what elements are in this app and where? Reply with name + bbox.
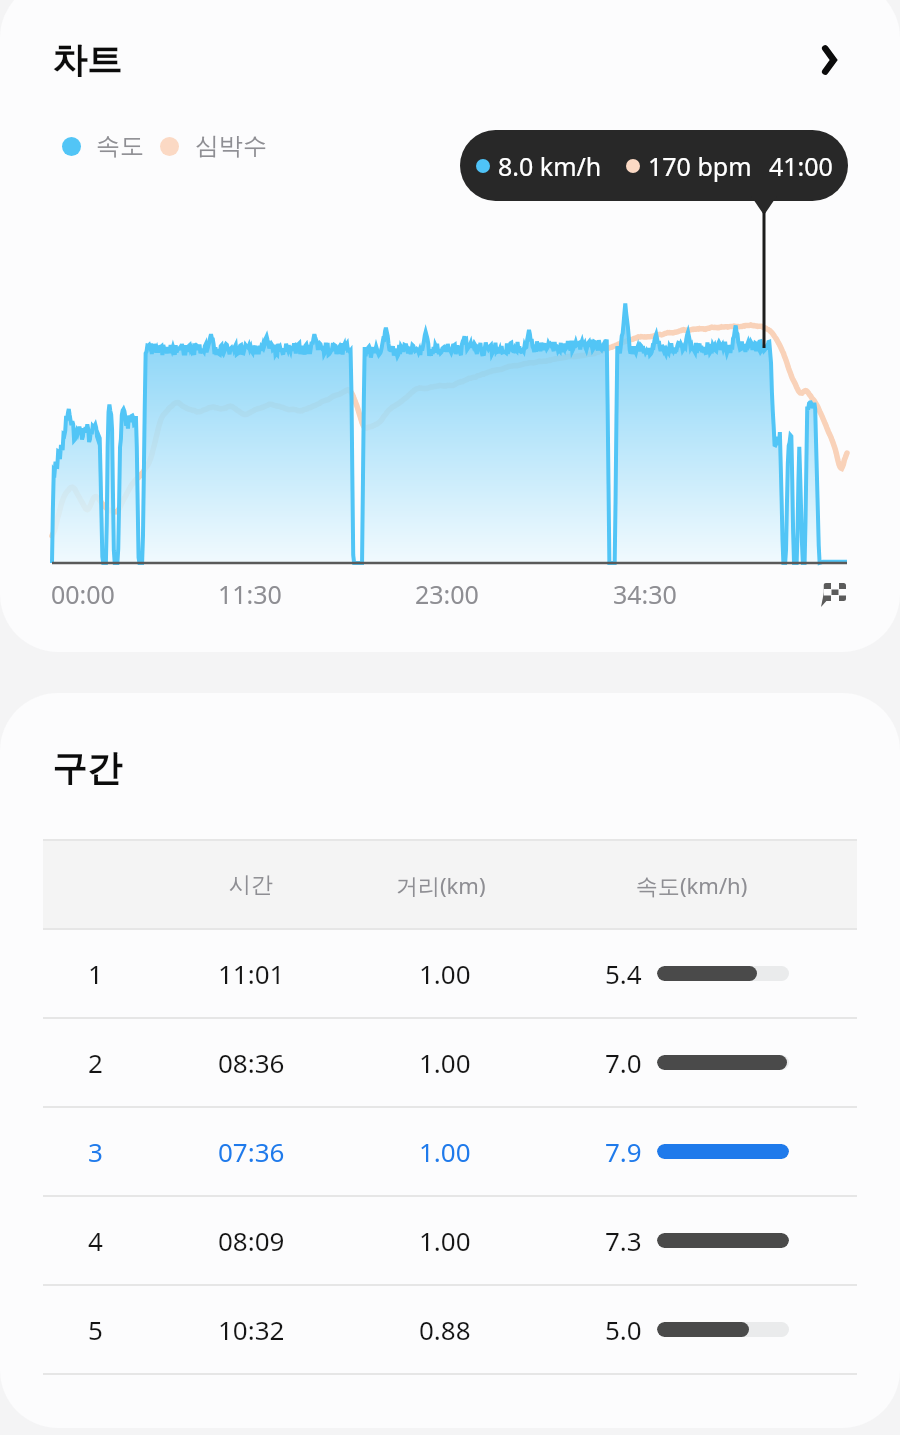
staticText: 시간 [229,871,273,899]
staticText: 23:00 [415,577,479,611]
staticText: 1.00 [419,1223,471,1258]
staticText: 거리(km) [396,870,486,900]
staticText: 0.88 [419,1312,471,1347]
staticText: 1.00 [419,1045,471,1080]
staticText: 5.0 [605,1312,642,1347]
staticText: 08:09 [218,1223,285,1258]
button[interactable]: 차트 [0,0,900,100]
staticText: 7.0 [605,1045,642,1080]
other: Finish [821,582,846,607]
staticText: 1.00 [419,956,471,991]
staticText: 11:01 [218,956,285,991]
button[interactable]: 1 [43,930,857,1017]
staticText: 1 [88,956,103,991]
staticText: 2 [88,1045,103,1080]
button[interactable]: 5 [43,1286,857,1373]
staticText: 08:36 [218,1045,285,1080]
staticText: 속도 [96,131,144,161]
staticText: 5 [88,1312,103,1347]
staticText: 8.0 km/h [498,149,602,183]
staticText: 7.3 [605,1223,642,1258]
staticText: 07:36 [218,1134,285,1169]
staticText: 00:00 [51,577,115,611]
staticText: 속도(km/h) [636,870,748,900]
button[interactable]: 4 [43,1197,857,1284]
staticText: 41:00 [769,149,833,183]
staticText: 10:32 [218,1312,285,1347]
staticText: 구간 [52,746,122,790]
staticText: 7.9 [605,1134,642,1169]
staticText: 1.00 [419,1134,471,1169]
button[interactable]: 8.0 km/h [460,130,848,201]
button[interactable]: 2 [43,1019,857,1106]
staticText: 차트 [52,38,122,82]
staticText: 34:30 [613,577,677,611]
staticText: 3 [88,1134,103,1169]
staticText: 11:30 [218,577,282,611]
button[interactable]: View chart details [804,32,860,88]
staticText: 5.4 [605,956,642,991]
staticText: 170 bpm [648,149,752,183]
staticText: 심박수 [195,131,267,161]
staticText: 4 [88,1223,103,1258]
button[interactable]: 3 [43,1108,857,1195]
